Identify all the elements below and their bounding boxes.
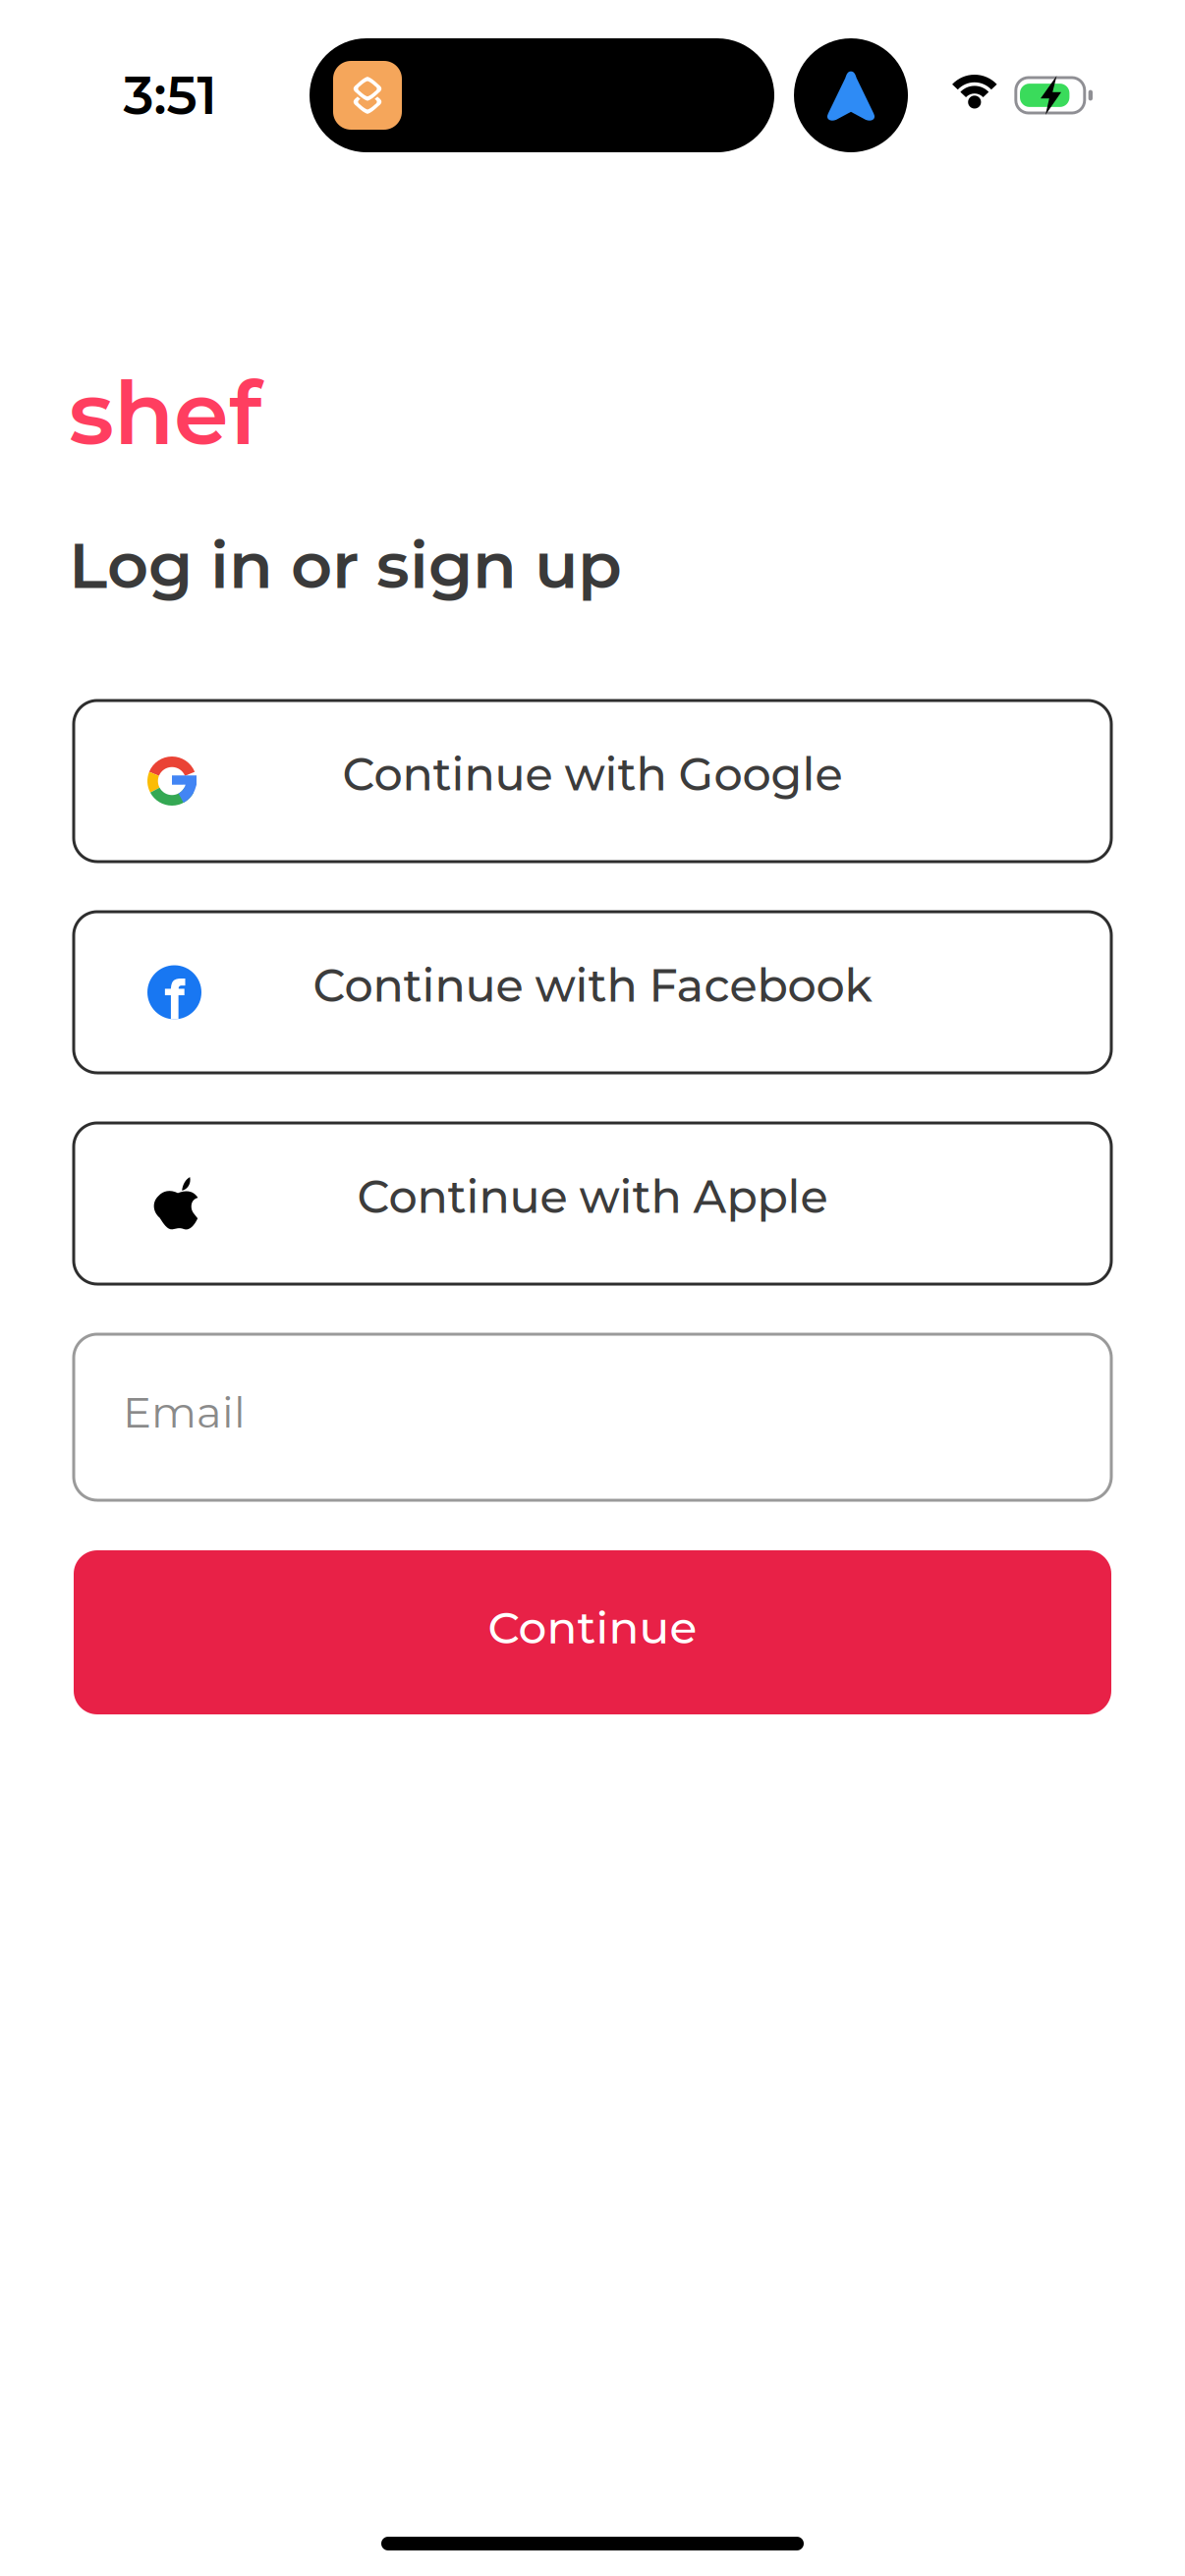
button[interactable]: Continue with Apple — [74, 1123, 1111, 1284]
button[interactable]: Continue with Google — [74, 700, 1111, 862]
staticText: Continue with Google — [342, 747, 843, 802]
staticText: Log in or sign up — [69, 526, 622, 604]
staticText: Continue with Apple — [357, 1169, 828, 1224]
button[interactable]: Continue — [74, 1550, 1111, 1714]
button[interactable]: Continue with Facebook — [74, 912, 1111, 1073]
staticText: Continue — [488, 1600, 697, 1655]
staticText: 3:51 — [123, 63, 217, 127]
staticText: Email — [123, 1386, 246, 1438]
button[interactable]: Email — [74, 1334, 1111, 1500]
staticText: shef — [69, 359, 261, 466]
staticText: Continue with Facebook — [313, 958, 872, 1013]
